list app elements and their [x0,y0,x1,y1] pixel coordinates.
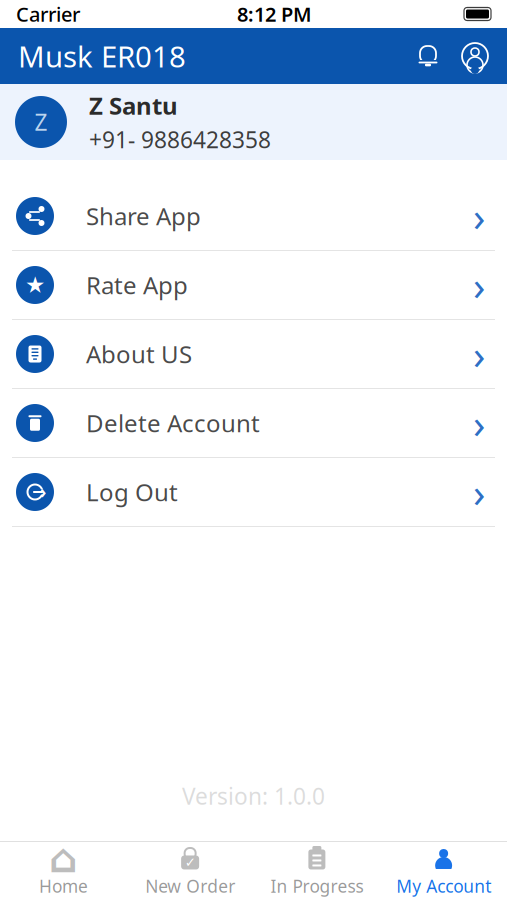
staticText: ⌂ [49,836,78,881]
button[interactable]: Profile [451,42,489,70]
staticText: › [473,327,485,380]
staticText: +91- 9886428358 [89,124,271,154]
button[interactable]: About US [0,320,507,389]
staticText: Musk ER018 [18,36,186,75]
button[interactable]: Delete Account [0,389,507,458]
button[interactable]: › [0,458,507,527]
staticText: Rate App [86,269,188,301]
button[interactable]: Share App [0,182,507,251]
staticText: New Order [145,874,235,897]
staticText: Share App [86,200,201,232]
staticText: Carrier [16,1,80,27]
button[interactable]: ✓ [127,838,254,900]
staticText: About US [86,338,192,370]
staticText: › [473,465,485,518]
button[interactable]: In Progress [253,838,380,900]
staticText: Home [39,874,88,897]
staticText: Log Out [86,476,178,508]
staticText: 8:12 PM [237,1,312,27]
button[interactable]: Notifications [405,43,451,69]
staticText: Delete Account [86,407,260,439]
staticText: In Progress [270,874,363,897]
staticText: › [40,480,46,503]
staticText: Version: 1.0.0 [182,781,325,811]
staticText: ★ [25,272,45,298]
button[interactable]: My Account [380,838,507,900]
staticText: ✓ [185,855,196,870]
staticText: My Account [396,874,491,897]
button[interactable]: ⌂ [0,838,127,900]
button[interactable]: ★ [0,251,507,320]
staticText: › [473,396,485,449]
staticText: › [473,189,485,242]
staticText: Z [34,107,47,137]
staticText: Z Santu [89,89,178,121]
staticText: › [473,258,485,311]
